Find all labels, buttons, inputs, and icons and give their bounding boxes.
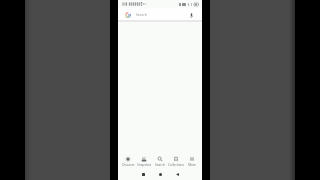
button[interactable]: Back [171,169,184,180]
staticText: Discover [122,163,135,167]
button[interactable]: Collections [168,153,184,169]
button[interactable]: Search [118,8,202,22]
button[interactable]: Discover [120,153,136,169]
button[interactable]: Home [154,169,167,180]
button[interactable]: Snapshot [136,153,152,169]
staticText: More [188,163,196,167]
staticText: Search [155,163,165,167]
other: Voice search [190,13,193,18]
staticText: Collections [168,163,184,167]
button[interactable]: Search [152,153,168,169]
button[interactable]: More [184,153,200,169]
button[interactable]: Recents [137,169,150,180]
staticText: Snapshot [137,163,151,167]
staticText: Search [136,12,147,17]
